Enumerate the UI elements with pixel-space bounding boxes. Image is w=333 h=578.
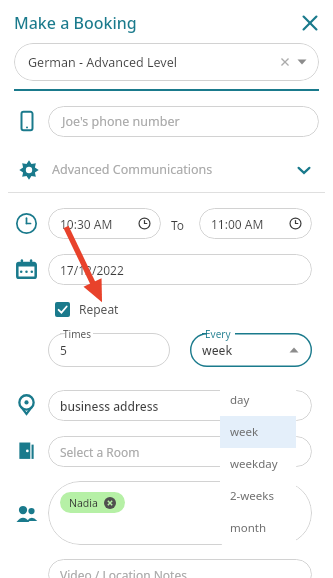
button[interactable]: day [220,384,296,416]
staticText: 17/12/2022 [60,262,124,278]
button[interactable]: 11:00 AM [199,208,312,239]
button[interactable]: German - Advanced Level [14,43,319,81]
staticText: 10:30 AM [60,216,113,232]
staticText: Select a Room [60,444,140,460]
button[interactable]: weekday [220,448,296,480]
staticText: Make a Booking [14,12,137,34]
staticText: Advanced Communications [52,161,213,178]
staticText: 5 [60,342,67,358]
staticText: month [230,520,267,536]
staticText: business address [60,398,159,414]
staticText: weekday [230,456,278,472]
staticText: Joe's phone number [62,113,180,130]
button[interactable]: Nadia [60,492,125,513]
button[interactable]: 10:30 AM [48,208,161,239]
button[interactable]: Nadia [48,481,312,545]
staticText: Video / Location Notes [60,567,187,578]
button[interactable]: Joe's phone number [48,106,319,137]
button[interactable]: 17/12/2022 [48,254,312,285]
button[interactable]: Repeat [55,301,119,317]
staticText: 11:00 AM [211,216,264,232]
button[interactable]: Advanced Communications [6,147,327,192]
button[interactable]: Every [190,333,312,367]
staticText: Times [63,327,91,341]
staticText: Nadia [69,496,98,510]
staticText: week [202,342,233,358]
button[interactable]: 2-weeks [220,480,296,512]
staticText: To [171,217,185,233]
button[interactable]: month [220,512,296,544]
staticText: day [230,392,250,408]
button[interactable]: Times [48,333,170,367]
staticText: German - Advanced Level [28,54,177,71]
button[interactable]: Select a Room [48,436,312,467]
button[interactable]: Video / Location Notes [48,559,312,578]
button[interactable]: Close [296,9,324,37]
staticText: week [230,424,259,440]
button[interactable]: week [220,416,296,448]
button[interactable]: Clear selection [277,54,293,70]
staticText: Repeat [79,301,119,317]
staticText: Every [205,327,231,341]
button[interactable]: Open course list [294,54,310,70]
button[interactable]: business address [48,390,312,421]
staticText: 2-weeks [230,488,274,504]
